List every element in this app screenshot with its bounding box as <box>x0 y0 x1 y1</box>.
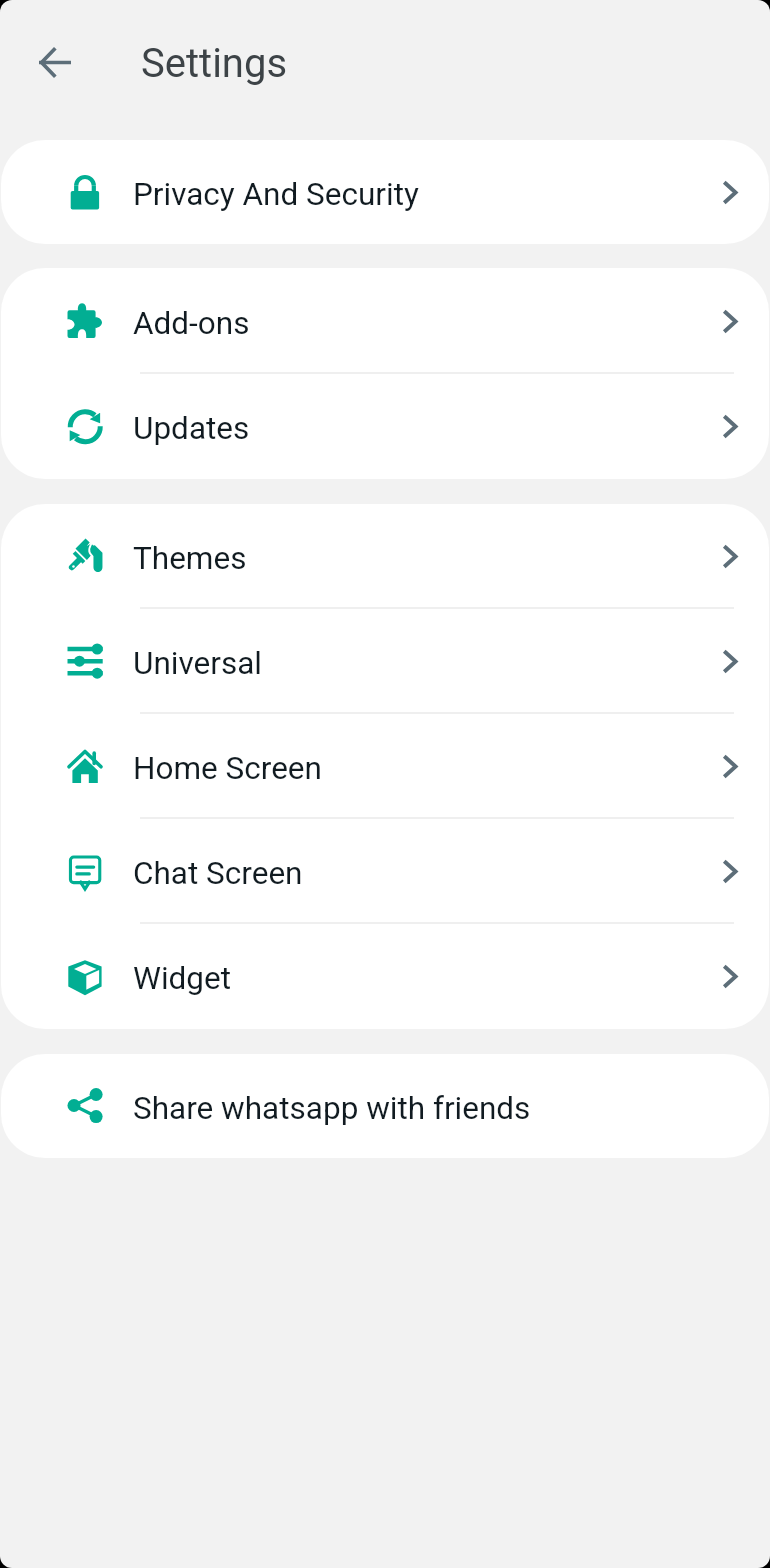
staticText: Home Screen <box>133 750 322 787</box>
button[interactable]: Add-ons <box>1 268 769 374</box>
button[interactable]: Universal <box>1 609 769 714</box>
staticText: Add-ons <box>133 305 250 342</box>
staticText: Widget <box>133 960 232 997</box>
button[interactable]: Chat Screen <box>1 819 769 924</box>
staticText: Share whatsapp with friends <box>133 1090 531 1127</box>
button[interactable]: Widget <box>1 924 769 1029</box>
button[interactable]: Privacy And Security <box>1 140 769 244</box>
staticText: Themes <box>133 540 247 577</box>
staticText: Privacy And Security <box>133 176 419 213</box>
button[interactable]: Home Screen <box>1 714 769 819</box>
staticText: Chat Screen <box>133 855 303 892</box>
button[interactable]: Themes <box>1 504 769 609</box>
button[interactable]: Back <box>23 30 87 94</box>
button[interactable]: Share whatsapp with friends <box>1 1054 769 1158</box>
staticText: Updates <box>133 410 250 447</box>
button[interactable]: Updates <box>1 374 769 479</box>
staticText: Universal <box>133 645 262 682</box>
staticText: Settings <box>141 40 288 87</box>
